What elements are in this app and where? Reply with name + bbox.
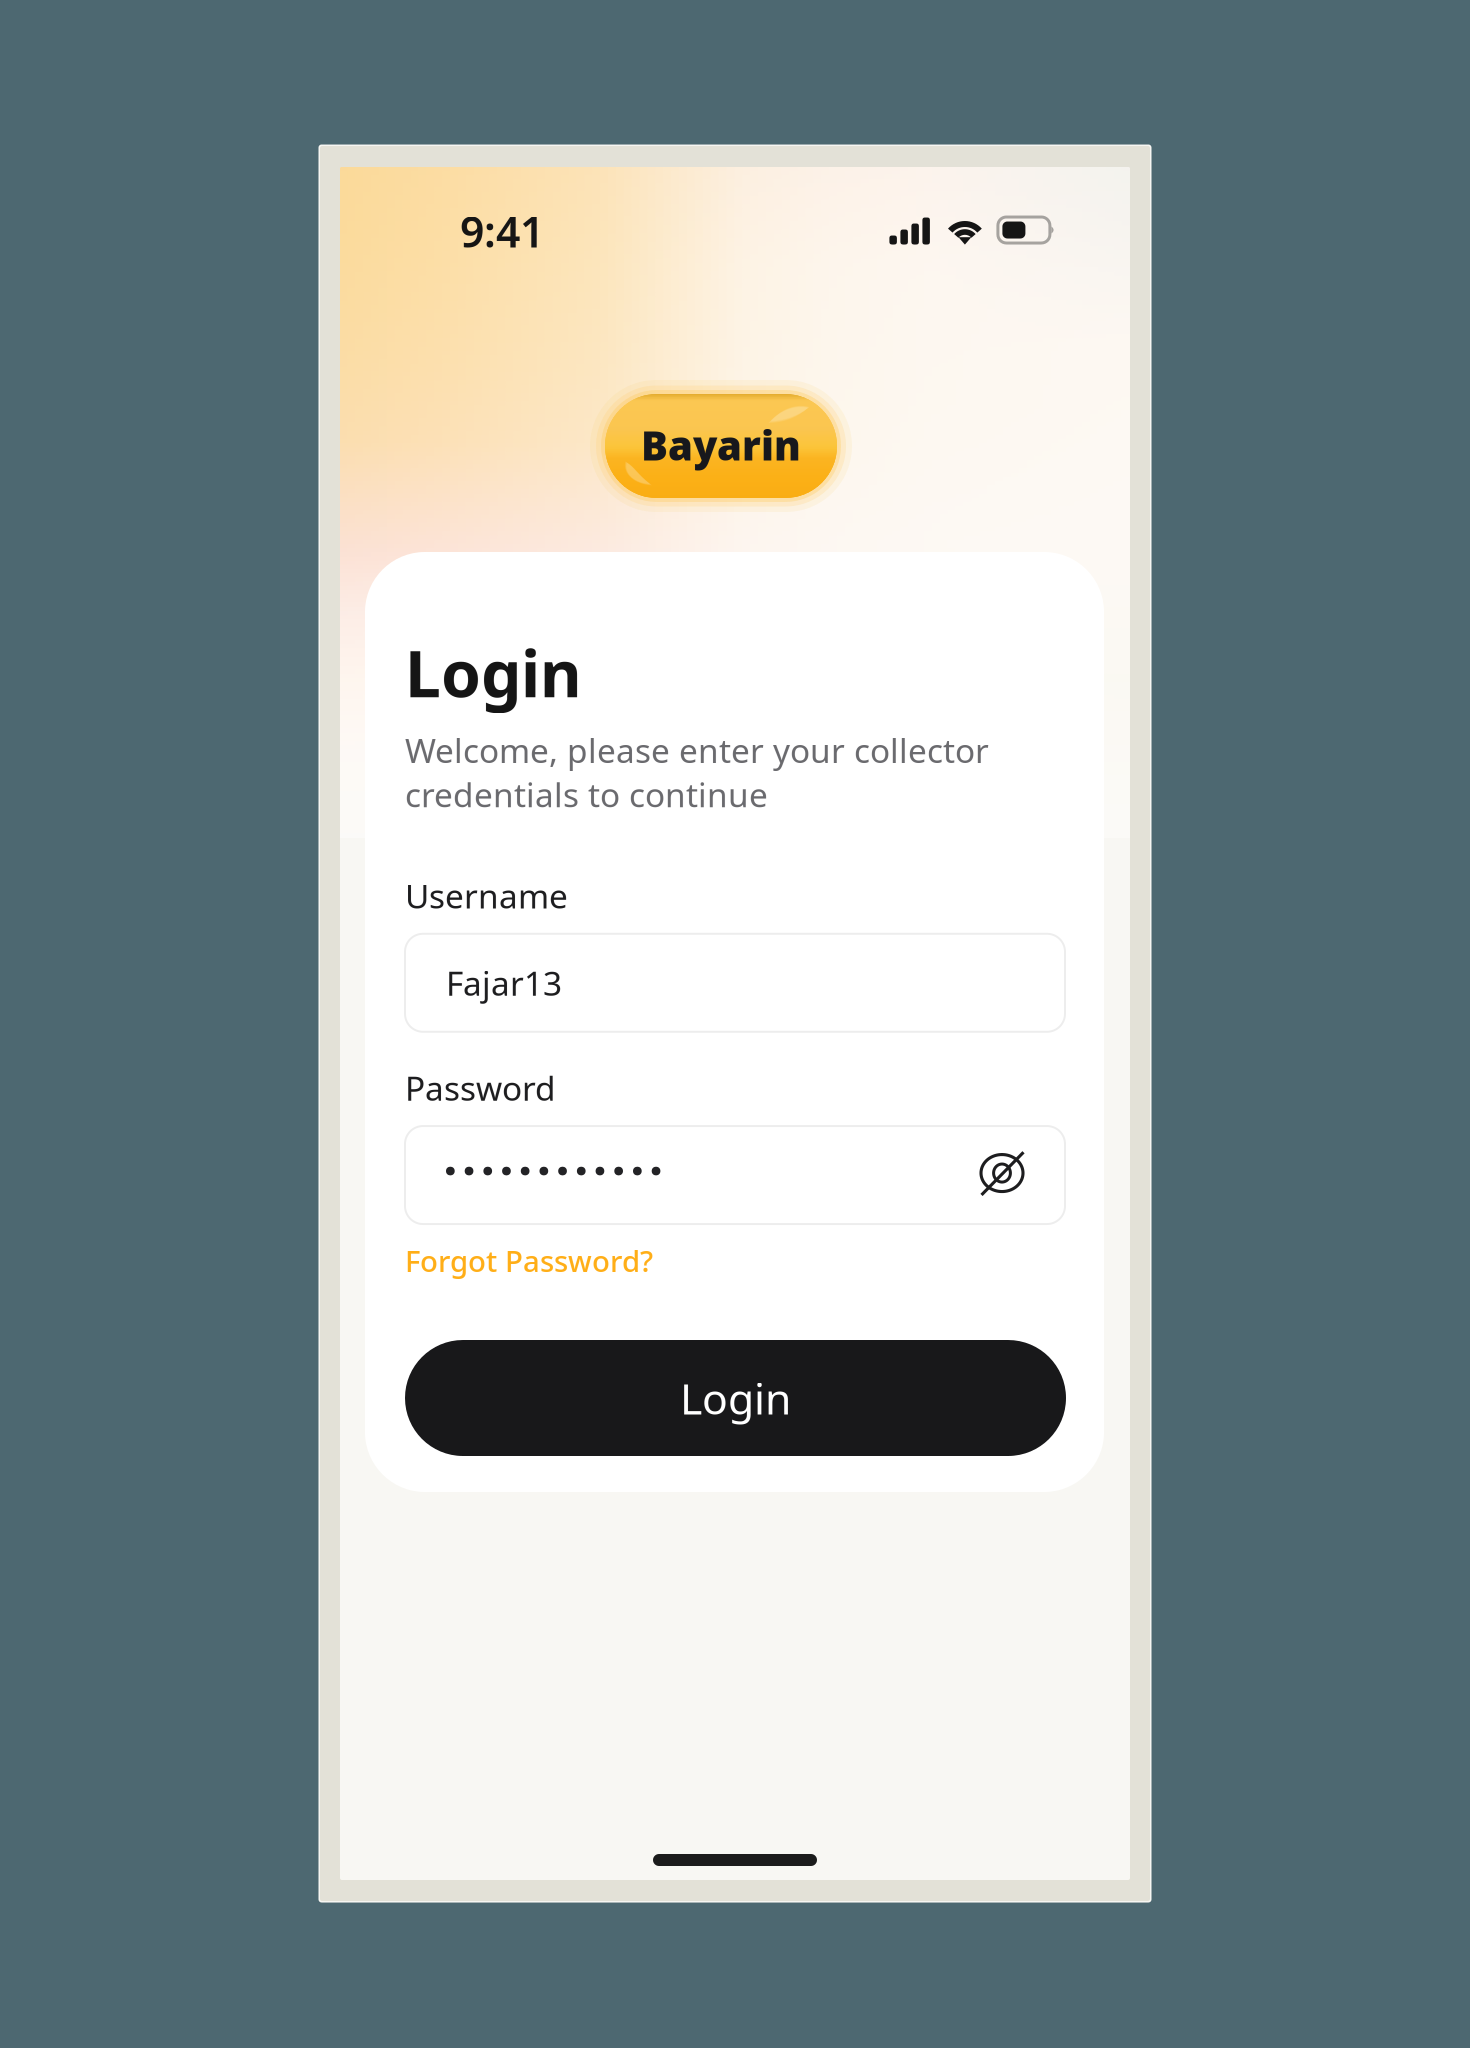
button[interactable]: Login (405, 1340, 1066, 1456)
staticText: Fajar13 (446, 961, 562, 1005)
staticText: 9:41 (460, 203, 544, 259)
staticText: credentials to continue (405, 772, 768, 817)
button[interactable]: Password (405, 1126, 1065, 1224)
staticText: Forgot Password? (405, 1241, 653, 1280)
staticText: Password (405, 1066, 556, 1110)
button[interactable]: Username (405, 934, 1065, 1032)
staticText: Welcome, please enter your collector (405, 728, 989, 772)
staticText: Bayarin (641, 418, 801, 471)
staticText: Login (680, 1370, 791, 1426)
button[interactable]: Show password (978, 1151, 1026, 1199)
staticText: Username (405, 873, 568, 918)
staticText: Login (405, 630, 582, 715)
button[interactable]: Forgot Password? (405, 1224, 653, 1284)
